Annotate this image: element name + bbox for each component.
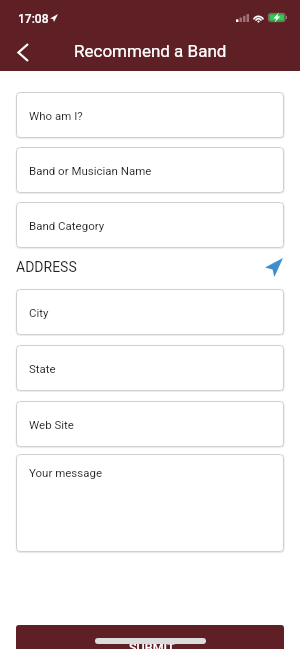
button[interactable]: Band Category	[16, 202, 284, 248]
staticText: Your message	[29, 466, 103, 479]
button[interactable]: Back	[0, 30, 44, 71]
staticText: Who am I?	[29, 109, 83, 122]
staticText: SUBMIT	[129, 640, 175, 649]
staticText: Band Category	[29, 219, 105, 232]
button[interactable]: SUBMIT	[16, 625, 284, 649]
button[interactable]: Your message	[16, 454, 284, 552]
staticText: Web Site	[29, 418, 74, 431]
staticText: 17:08	[18, 12, 49, 26]
staticText: Recommend a Band	[74, 41, 227, 61]
button[interactable]: City	[16, 289, 284, 335]
staticText: Band or Musician Name	[29, 164, 152, 177]
staticText: State	[29, 362, 56, 375]
button[interactable]: Web Site	[16, 401, 284, 447]
button[interactable]: Band or Musician Name	[16, 147, 284, 193]
button[interactable]: State	[16, 345, 284, 391]
staticText: ADDRESS	[16, 259, 77, 275]
button[interactable]: Use current location	[261, 254, 287, 280]
staticText: City	[29, 306, 49, 319]
button[interactable]: Who am I?	[16, 92, 284, 138]
